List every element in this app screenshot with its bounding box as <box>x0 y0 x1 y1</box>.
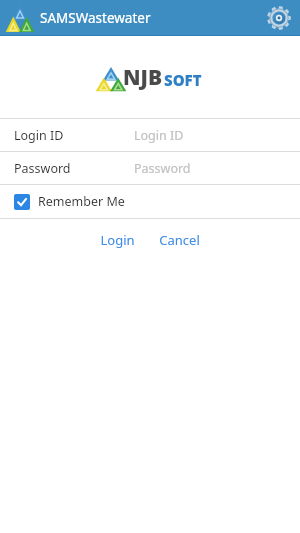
staticText: Password <box>14 160 71 177</box>
button[interactable]: Cancel <box>151 227 208 253</box>
button[interactable]: Remember Me <box>0 185 300 218</box>
staticText: Login ID <box>134 127 184 144</box>
button[interactable]: Password <box>0 152 300 184</box>
staticText: NJB <box>123 63 163 92</box>
staticText: Password <box>134 160 191 177</box>
button[interactable]: Settings <box>264 3 294 33</box>
staticText: Login ID <box>14 127 64 144</box>
staticText: Cancel <box>159 231 200 249</box>
staticText: Remember Me <box>38 193 125 210</box>
button[interactable]: Login <box>92 227 143 253</box>
staticText: Login <box>100 231 135 249</box>
button[interactable]: Login ID <box>0 119 300 151</box>
staticText: SOFT <box>164 70 202 90</box>
staticText: SAMSWastewater <box>40 9 151 27</box>
